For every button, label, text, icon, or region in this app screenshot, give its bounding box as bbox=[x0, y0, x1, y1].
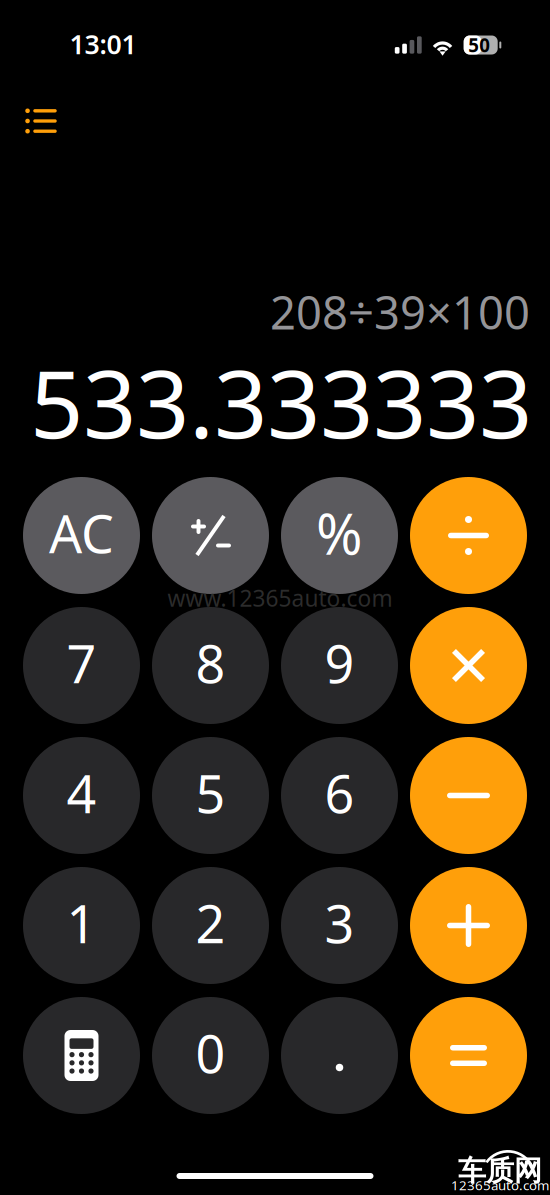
button[interactable]: 5 bbox=[152, 737, 269, 854]
button[interactable]: 4 bbox=[23, 737, 140, 854]
button[interactable]: Toggle sign bbox=[152, 477, 269, 594]
button[interactable]: History bbox=[17, 99, 65, 143]
staticText: 9 bbox=[324, 628, 354, 698]
staticText: 0 bbox=[195, 1018, 225, 1088]
button[interactable]: 8 bbox=[152, 607, 269, 724]
button[interactable]: Equals bbox=[410, 997, 527, 1114]
staticText: % bbox=[316, 496, 363, 570]
staticText: 3 bbox=[324, 888, 354, 958]
staticText: 4 bbox=[66, 758, 96, 828]
staticText: 8 bbox=[195, 628, 225, 698]
staticText: 533.333333 bbox=[30, 340, 532, 464]
button[interactable]: 9 bbox=[281, 607, 398, 724]
staticText: 208÷39×100 bbox=[270, 282, 530, 342]
staticText: 7 bbox=[66, 628, 96, 698]
button[interactable]: % bbox=[281, 477, 398, 594]
button[interactable]: Multiply bbox=[410, 607, 527, 724]
button[interactable]: 2 bbox=[152, 867, 269, 984]
button[interactable]: Decimal point bbox=[281, 997, 398, 1114]
button[interactable]: Divide bbox=[410, 477, 527, 594]
staticText: 6 bbox=[324, 758, 354, 828]
staticText: 12365auto.com bbox=[451, 1176, 549, 1194]
staticText: 2 bbox=[195, 888, 225, 958]
button[interactable]: Subtract bbox=[410, 737, 527, 854]
button[interactable]: Calculator bbox=[23, 997, 140, 1114]
staticText: 1 bbox=[66, 888, 96, 958]
button[interactable]: 1 bbox=[23, 867, 140, 984]
button[interactable]: AC bbox=[23, 477, 140, 594]
staticText: www.12365auto.com bbox=[167, 583, 392, 613]
staticText: AC bbox=[49, 498, 114, 568]
button[interactable]: 0 bbox=[152, 997, 269, 1114]
staticText: 13:01 bbox=[69, 26, 136, 62]
button[interactable]: 3 bbox=[281, 867, 398, 984]
button[interactable]: 7 bbox=[23, 607, 140, 724]
button[interactable]: Add bbox=[410, 867, 527, 984]
staticText: 车质网 bbox=[458, 1154, 542, 1188]
button[interactable]: 6 bbox=[281, 737, 398, 854]
staticText: 5 bbox=[195, 758, 225, 828]
staticText: 50 bbox=[468, 33, 490, 57]
